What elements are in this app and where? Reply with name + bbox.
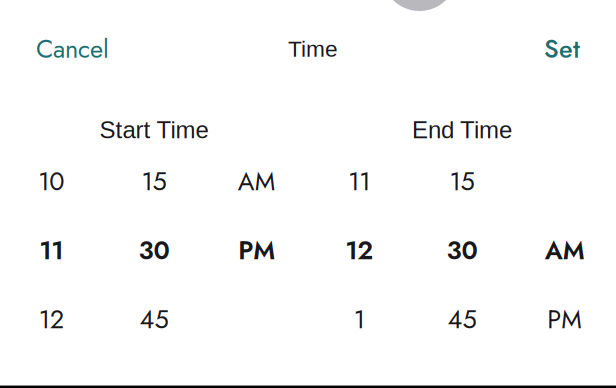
button[interactable]: 15 bbox=[411, 147, 513, 216]
staticText: Cancel bbox=[36, 31, 109, 67]
button[interactable]: 1 bbox=[308, 285, 411, 354]
staticText: 11 bbox=[348, 163, 370, 200]
staticText: 30 bbox=[446, 232, 477, 269]
button[interactable]: 30 bbox=[411, 216, 513, 285]
staticText: 30 bbox=[138, 232, 169, 269]
button[interactable]: PM bbox=[205, 216, 308, 285]
staticText: 12 bbox=[39, 301, 64, 338]
button[interactable]: PM bbox=[513, 285, 616, 354]
staticText: AM bbox=[238, 163, 276, 200]
button[interactable]: 15 bbox=[103, 147, 205, 216]
button[interactable]: Cancel bbox=[22, 21, 123, 77]
staticText: 15 bbox=[449, 163, 474, 200]
button[interactable]: AM bbox=[513, 216, 616, 285]
button[interactable]: Set bbox=[530, 21, 594, 77]
button[interactable]: AM bbox=[205, 147, 308, 216]
button[interactable]: 10 bbox=[0, 147, 103, 216]
staticText: 15 bbox=[141, 163, 166, 200]
staticText: 12 bbox=[345, 232, 373, 269]
button[interactable]: 12 bbox=[0, 285, 103, 354]
staticText: End Time bbox=[412, 117, 512, 143]
staticText: 11 bbox=[39, 232, 63, 269]
staticText: Start Time bbox=[99, 117, 208, 143]
button[interactable]: 11 bbox=[308, 147, 411, 216]
staticText: 45 bbox=[447, 301, 476, 338]
button[interactable]: 30 bbox=[103, 216, 205, 285]
staticText: 10 bbox=[38, 163, 64, 200]
staticText: Time bbox=[288, 36, 338, 62]
staticText: AM bbox=[545, 232, 585, 269]
button[interactable]: 12 bbox=[308, 216, 411, 285]
button[interactable]: 45 bbox=[103, 285, 205, 354]
staticText: 1 bbox=[354, 301, 365, 338]
staticText: Set bbox=[544, 31, 580, 67]
button[interactable]: 11 bbox=[0, 216, 103, 285]
staticText: PM bbox=[238, 232, 275, 269]
button[interactable]: 45 bbox=[411, 285, 513, 354]
staticText: PM bbox=[547, 301, 582, 338]
staticText: 45 bbox=[139, 301, 168, 338]
